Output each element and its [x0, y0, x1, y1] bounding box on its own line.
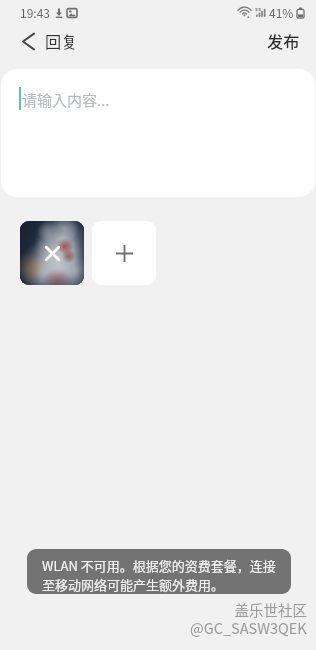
staticText: @GC_SASW3QEK: [190, 617, 307, 638]
staticText: WLAN 不可用。根据您的资费套餐，连接至移动网络可能产生额外费用。: [42, 556, 278, 594]
button[interactable]: WLAN 不可用。根据您的资费套餐，连接至移动网络可能产生额外费用。: [27, 549, 291, 594]
other: Back: [21, 32, 36, 51]
button[interactable]: 发布: [255, 24, 316, 58]
staticText: 发布: [267, 29, 300, 51]
staticText: 回复: [45, 29, 78, 52]
button[interactable]: 请输入内容...: [1, 69, 315, 197]
staticText: 41%: [269, 4, 294, 21]
button[interactable]: Add image: [92, 221, 156, 285]
button[interactable]: Remove image: [20, 221, 84, 285]
staticText: 请输入内容...: [22, 89, 110, 111]
button[interactable]: Back: [0, 30, 86, 53]
staticText: 19:43: [20, 4, 50, 21]
staticText: 盖乐世社区: [234, 599, 307, 620]
